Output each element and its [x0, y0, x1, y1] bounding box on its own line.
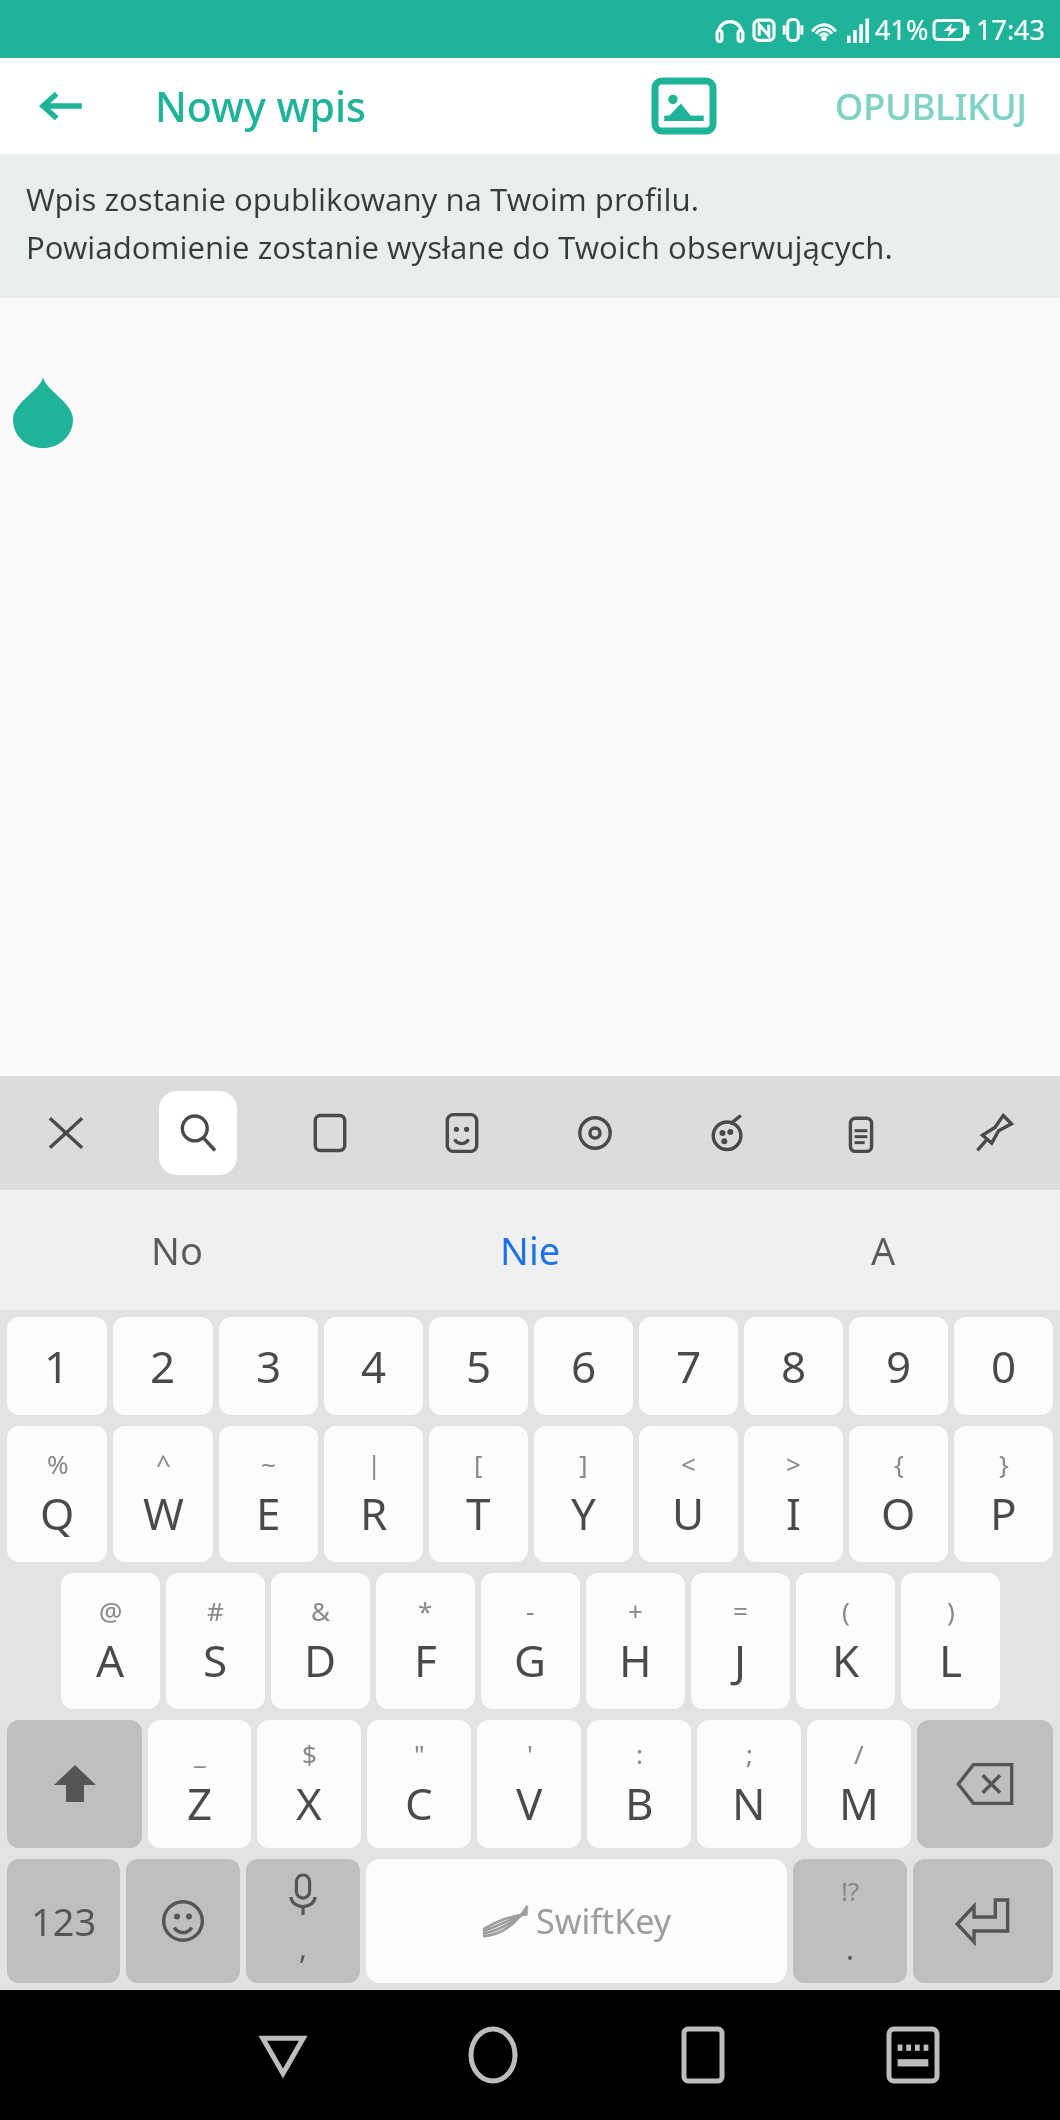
button[interactable]: Recents — [598, 1990, 808, 2120]
button[interactable]: Hide keyboard — [808, 1990, 1018, 2120]
staticText: ( — [842, 1593, 850, 1628]
button[interactable]: > — [744, 1426, 843, 1562]
button[interactable]: " — [367, 1720, 471, 1848]
button[interactable]: & — [271, 1573, 370, 1709]
button[interactable]: Period — [793, 1859, 907, 1983]
staticText: J — [734, 1630, 747, 1690]
button[interactable]: ( — [796, 1573, 895, 1709]
staticText: S — [203, 1630, 228, 1690]
staticText: = — [733, 1593, 748, 1628]
button[interactable]: Emoji — [126, 1859, 240, 1983]
staticText: G — [514, 1630, 547, 1690]
button[interactable]: gear — [528, 1076, 661, 1190]
button[interactable]: _ — [148, 1720, 251, 1848]
button[interactable]: * — [376, 1573, 475, 1709]
button[interactable]: Enter — [913, 1859, 1053, 1983]
button[interactable]: No — [0, 1190, 354, 1310]
staticText: ' — [527, 1736, 533, 1771]
button[interactable]: ] — [534, 1426, 633, 1562]
staticText: _ — [194, 1736, 206, 1771]
button[interactable]: ^ — [113, 1426, 213, 1562]
staticText: E — [256, 1483, 281, 1543]
staticText: 4 — [361, 1336, 387, 1396]
button[interactable]: search — [132, 1076, 264, 1190]
button[interactable]: ' — [477, 1720, 581, 1848]
staticText: ^ — [156, 1446, 171, 1481]
button[interactable]: Space — [366, 1859, 787, 1983]
staticText: Z — [187, 1773, 213, 1833]
button[interactable]: Voice input — [246, 1859, 360, 1983]
staticText: ; — [746, 1736, 753, 1771]
button[interactable]: : — [587, 1720, 691, 1848]
staticText: ~ — [261, 1446, 276, 1481]
button[interactable]: 0 — [954, 1317, 1053, 1415]
button[interactable]: gif — [264, 1076, 396, 1190]
button[interactable]: Back — [178, 1990, 388, 2120]
button[interactable]: < — [639, 1426, 738, 1562]
button[interactable]: } — [954, 1426, 1053, 1562]
button[interactable]: x — [0, 1076, 132, 1190]
staticText: Nowy wpis — [155, 78, 366, 134]
staticText: : — [636, 1736, 643, 1771]
button[interactable]: - — [481, 1573, 580, 1709]
button[interactable]: Backspace — [917, 1720, 1053, 1848]
staticText: A — [96, 1630, 125, 1690]
staticText: * — [418, 1593, 433, 1628]
button[interactable]: 9 — [849, 1317, 948, 1415]
button[interactable]: [ — [429, 1426, 528, 1562]
button[interactable]: Numbers — [7, 1859, 120, 1983]
staticText: 123 — [31, 1895, 97, 1947]
staticText: # — [207, 1593, 224, 1628]
button[interactable]: Shift — [7, 1720, 142, 1848]
button[interactable]: 3 — [219, 1317, 318, 1415]
staticText: U — [672, 1483, 705, 1543]
button[interactable]: 6 — [534, 1317, 633, 1415]
staticText: D — [304, 1630, 337, 1690]
button[interactable]: 4 — [324, 1317, 423, 1415]
button[interactable]: = — [691, 1573, 790, 1709]
staticText: > — [786, 1446, 801, 1481]
button[interactable]: pin — [927, 1076, 1060, 1190]
button[interactable]: + — [586, 1573, 685, 1709]
button[interactable]: Back — [26, 70, 98, 142]
button[interactable]: Nie — [354, 1190, 707, 1310]
button[interactable]: # — [166, 1573, 265, 1709]
button[interactable]: @ — [61, 1573, 160, 1709]
button[interactable]: A — [707, 1190, 1060, 1310]
staticText: ] — [579, 1446, 588, 1481]
button[interactable]: 2 — [113, 1317, 213, 1415]
staticText: W — [143, 1483, 184, 1543]
button[interactable]: 8 — [744, 1317, 843, 1415]
button[interactable]: $ — [257, 1720, 361, 1848]
button[interactable]: clip — [794, 1076, 927, 1190]
button[interactable]: Add image — [648, 70, 720, 142]
staticText: $ — [302, 1736, 317, 1771]
staticText: 8 — [781, 1336, 807, 1396]
staticText: F — [414, 1630, 437, 1690]
staticText: % — [47, 1446, 69, 1481]
button[interactable]: % — [7, 1426, 107, 1562]
button[interactable]: Home — [388, 1990, 598, 2120]
button[interactable]: palette — [661, 1076, 794, 1190]
button[interactable]: { — [849, 1426, 948, 1562]
staticText: Wpis zostanie opublikowany na Twoim prof… — [26, 178, 699, 220]
button[interactable]: 1 — [7, 1317, 107, 1415]
staticText: T — [466, 1483, 491, 1543]
staticText: < — [681, 1446, 696, 1481]
button[interactable]: 7 — [639, 1317, 738, 1415]
staticText: " — [414, 1736, 425, 1771]
button[interactable]: 5 — [429, 1317, 528, 1415]
button[interactable]: sticker — [396, 1076, 528, 1190]
button[interactable]: ~ — [219, 1426, 318, 1562]
staticText: } — [999, 1446, 1009, 1481]
staticText: P — [990, 1483, 1017, 1543]
staticText: 41% — [875, 11, 929, 48]
staticText: Powiadomienie zostanie wysłane do Twoich… — [26, 226, 893, 268]
staticText: I — [786, 1483, 801, 1543]
button[interactable]: / — [807, 1720, 911, 1848]
button[interactable]: | — [324, 1426, 423, 1562]
button[interactable]: OPUBLIKUJ — [821, 70, 1042, 143]
button[interactable]: ; — [697, 1720, 801, 1848]
staticText: | — [367, 1446, 382, 1481]
button[interactable]: ) — [901, 1573, 1000, 1709]
